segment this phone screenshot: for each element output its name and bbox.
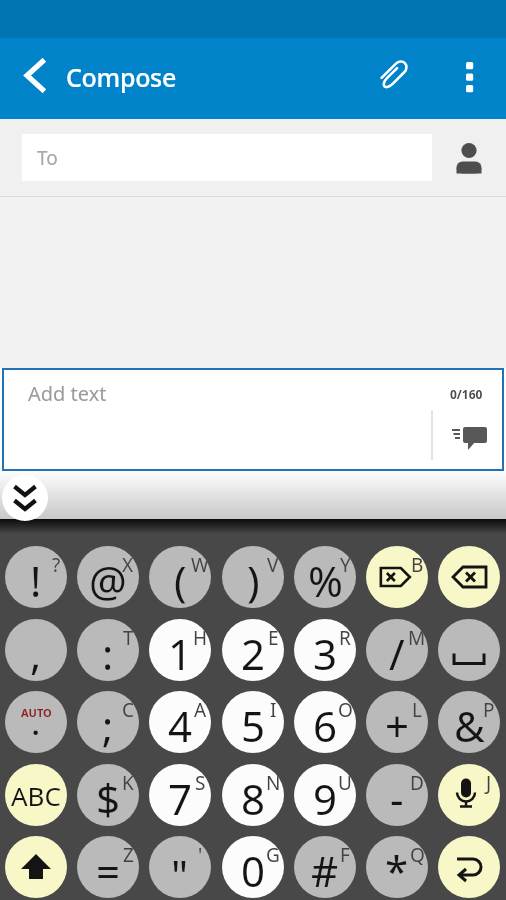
- staticText: R: [339, 625, 351, 651]
- staticText: !: [30, 552, 42, 608]
- button[interactable]: ,: [5, 619, 67, 681]
- button[interactable]: 0: [222, 836, 284, 898]
- staticText: AUTO: [21, 705, 52, 720]
- staticText: K: [122, 770, 134, 796]
- staticText: F: [340, 842, 350, 868]
- staticText: +: [385, 697, 410, 753]
- button[interactable]: &: [438, 691, 500, 753]
- button[interactable]: 4: [149, 691, 211, 753]
- button[interactable]: [2, 475, 48, 521]
- button[interactable]: 7: [149, 764, 211, 826]
- button[interactable]: [438, 619, 500, 681]
- button[interactable]: [445, 45, 497, 105]
- staticText: Q: [410, 842, 425, 868]
- button[interactable]: 2: [222, 619, 284, 681]
- staticText: .: [32, 707, 40, 742]
- button[interactable]: [4, 370, 502, 469]
- button[interactable]: 5: [222, 691, 284, 753]
- staticText: D: [410, 770, 424, 796]
- button[interactable]: 6: [294, 691, 356, 753]
- button[interactable]: +: [366, 691, 428, 753]
- button[interactable]: ): [222, 546, 284, 608]
- button[interactable]: /: [366, 619, 428, 681]
- button[interactable]: %: [294, 546, 356, 608]
- button[interactable]: #: [294, 836, 356, 898]
- staticText: ,: [30, 625, 42, 681]
- staticText: 8: [241, 770, 266, 826]
- button[interactable]: [5, 691, 67, 753]
- staticText: M: [408, 625, 426, 651]
- staticText: H: [193, 625, 208, 651]
- staticText: 7: [168, 770, 193, 826]
- staticText: :: [102, 625, 114, 681]
- staticText: Compose: [66, 60, 177, 94]
- button[interactable]: [438, 546, 500, 608]
- button[interactable]: [22, 134, 432, 181]
- button[interactable]: 9: [294, 764, 356, 826]
- staticText: &: [454, 697, 485, 753]
- button[interactable]: [444, 128, 496, 184]
- button[interactable]: [438, 836, 500, 898]
- button[interactable]: *: [366, 836, 428, 898]
- staticText: T: [123, 625, 134, 651]
- staticText: @: [89, 552, 127, 608]
- staticText: Y: [340, 552, 351, 578]
- staticText: 0: [241, 842, 266, 898]
- button[interactable]: [8, 48, 60, 108]
- button[interactable]: ;: [77, 691, 139, 753]
- staticText: 3: [313, 625, 338, 681]
- staticText: ): [247, 552, 260, 608]
- button[interactable]: $: [77, 764, 139, 826]
- staticText: To: [37, 145, 58, 171]
- button[interactable]: 3: [294, 619, 356, 681]
- staticText: G: [266, 842, 280, 868]
- staticText: X: [122, 552, 134, 578]
- staticText: 5: [241, 697, 266, 753]
- staticText: ': [198, 842, 203, 868]
- staticText: *: [385, 842, 409, 898]
- staticText: O: [338, 697, 353, 723]
- button[interactable]: [5, 836, 67, 898]
- staticText: /: [389, 625, 405, 681]
- staticText: 1: [168, 625, 193, 681]
- button[interactable]: 8: [222, 764, 284, 826]
- staticText: W: [191, 552, 209, 578]
- staticText: B: [411, 552, 424, 578]
- staticText: V: [267, 552, 279, 578]
- staticText: 2: [241, 625, 266, 681]
- staticText: U: [338, 770, 352, 796]
- button[interactable]: -: [366, 764, 428, 826]
- button[interactable]: :: [77, 619, 139, 681]
- staticText: 0/160: [450, 386, 483, 402]
- staticText: 9: [313, 770, 338, 826]
- staticText: =: [96, 842, 121, 898]
- staticText: %: [308, 552, 343, 608]
- button[interactable]: ": [149, 836, 211, 898]
- button[interactable]: [370, 45, 422, 105]
- button[interactable]: =: [77, 836, 139, 898]
- button[interactable]: [440, 418, 496, 460]
- staticText: 6: [313, 697, 338, 753]
- staticText: Add text: [28, 380, 107, 407]
- button[interactable]: @: [77, 546, 139, 608]
- button[interactable]: !: [5, 546, 67, 608]
- button[interactable]: 1: [149, 619, 211, 681]
- button[interactable]: J: [438, 764, 500, 826]
- staticText: I: [270, 697, 277, 723]
- staticText: ?: [52, 552, 61, 578]
- staticText: (: [174, 552, 187, 608]
- staticText: Z: [123, 842, 134, 868]
- button[interactable]: (: [149, 546, 211, 608]
- staticText: ": [171, 846, 189, 898]
- staticText: C: [122, 697, 135, 723]
- staticText: E: [268, 625, 279, 651]
- staticText: P: [483, 697, 495, 723]
- staticText: A: [194, 697, 207, 723]
- button[interactable]: B: [366, 546, 428, 608]
- staticText: ABC: [11, 778, 61, 813]
- staticText: $: [96, 770, 121, 826]
- button[interactable]: ABC: [5, 764, 67, 826]
- staticText: 4: [168, 697, 193, 753]
- staticText: L: [412, 697, 422, 723]
- staticText: J: [486, 770, 492, 796]
